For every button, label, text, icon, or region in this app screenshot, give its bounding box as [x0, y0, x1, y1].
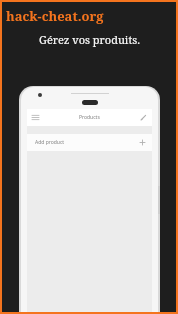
- staticText: Gérez vos produits.: [39, 32, 140, 47]
- button[interactable]: Edit: [135, 109, 152, 126]
- staticText: Add product: [35, 139, 65, 146]
- button[interactable]: Add product: [27, 134, 152, 151]
- staticText: hack-cheat.org: [6, 7, 104, 25]
- button[interactable]: Open navigation menu: [27, 109, 44, 126]
- staticText: Products: [79, 114, 100, 121]
